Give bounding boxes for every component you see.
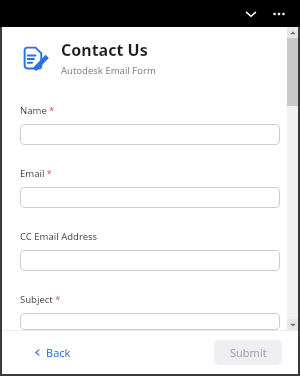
staticText: Autodesk Email Form bbox=[61, 64, 156, 77]
button[interactable] bbox=[20, 250, 280, 271]
staticText: Back bbox=[46, 345, 71, 360]
staticText: Name * bbox=[20, 104, 55, 117]
staticText: Submit bbox=[230, 345, 267, 360]
button[interactable]: Back bbox=[30, 341, 75, 364]
button[interactable] bbox=[20, 313, 280, 330]
button[interactable]: Scroll up bbox=[287, 27, 298, 38]
button[interactable]: Scroll down bbox=[287, 319, 298, 330]
button[interactable]: More options bbox=[266, 1, 292, 27]
button[interactable]: Submit bbox=[214, 340, 282, 365]
button[interactable] bbox=[20, 124, 280, 145]
staticText: Subject * bbox=[20, 293, 61, 306]
button[interactable] bbox=[20, 187, 280, 208]
staticText: Contact Us bbox=[61, 39, 148, 61]
button[interactable]: Collapse bbox=[238, 1, 264, 27]
staticText: Email * bbox=[20, 167, 52, 180]
staticText: CC Email Address bbox=[20, 230, 98, 243]
